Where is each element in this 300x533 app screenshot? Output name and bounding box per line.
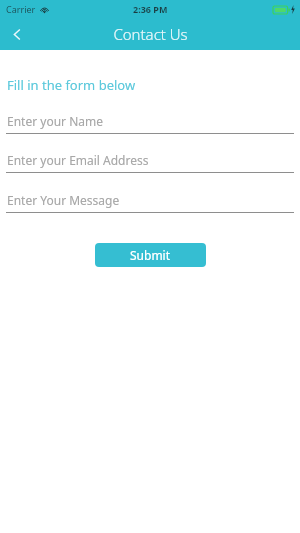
button[interactable]: Enter your Email Address: [0, 152, 300, 173]
staticText: Carrier: [6, 3, 36, 15]
staticText: Enter your Email Address: [7, 152, 149, 168]
button[interactable]: Submit: [95, 243, 206, 267]
staticText: Fill in the form below: [7, 76, 136, 94]
staticText: Contact Us: [113, 24, 188, 44]
button[interactable]: Back: [0, 18, 34, 50]
staticText: 2:36 PM: [133, 3, 168, 15]
button[interactable]: Enter your Name: [0, 113, 300, 134]
staticText: Enter Your Message: [7, 192, 120, 208]
button[interactable]: Enter Your Message: [0, 192, 300, 213]
staticText: Submit: [130, 247, 171, 263]
staticText: Enter your Name: [7, 113, 103, 129]
